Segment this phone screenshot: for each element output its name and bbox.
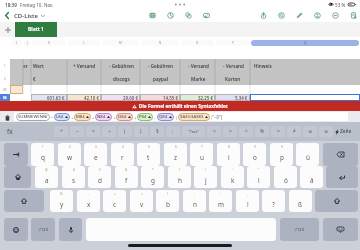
button[interactable]: × [86,126,100,137]
button[interactable]: Zahlen und Symbole [31,218,55,241]
button[interactable]: * [141,166,164,188]
button[interactable]: Umschalt [4,190,44,212]
button[interactable]: Multitasking [173,3,187,6]
button[interactable]: . [262,190,285,212]
button[interactable]: 9 [243,143,266,166]
button[interactable]: 8 [217,143,240,166]
button[interactable]: 7 [190,143,213,166]
button[interactable]: Tabelle einfügen [143,9,161,22]
button[interactable]: + [103,190,126,212]
button[interactable]: + [54,126,68,137]
button[interactable]: Q [251,40,359,46]
staticText: ; [194,192,195,196]
button[interactable]: : [166,126,180,137]
button[interactable]: ö [274,166,297,188]
staticText: L84 [56,114,64,120]
button[interactable]: ' [221,166,244,188]
button[interactable]: Diktieren [59,218,82,241]
button[interactable]: Mitarbeiten [308,9,326,22]
button[interactable]: – [70,126,84,137]
button[interactable]: Zeilenumbruch [326,166,358,188]
button[interactable]: # [62,166,85,188]
button[interactable]: Mehr [344,9,360,22]
button[interactable]: Emoji [4,218,28,241]
button[interactable]: % [255,126,269,137]
button[interactable]: M84 [76,113,89,121]
button[interactable]: Blatt hinzufügen [0,22,15,37]
button[interactable]: , [236,190,259,212]
button[interactable]: Löschen [323,143,358,166]
button[interactable]: Zurück [1,9,12,22]
button[interactable]: 4 [111,143,134,166]
button[interactable]: Umschalt [315,190,358,212]
button[interactable]: ) [194,166,217,188]
button[interactable]: K [32,40,66,46]
button[interactable]: $ [150,126,164,137]
button[interactable]: Formel löschen [3,113,12,122]
button[interactable]: ≠ [287,126,301,137]
button[interactable]: @ [35,166,58,188]
button[interactable]: SUMMEWENN( [14,112,348,121]
button[interactable]: ß [289,190,312,212]
button[interactable]: Blatt 1 [15,22,57,37]
button[interactable]: Form einfügen [179,9,197,22]
button[interactable]: I [11,40,22,46]
button[interactable]: Q84 [159,113,172,121]
button[interactable]: M [102,40,139,46]
button[interactable]: ≤ [303,126,317,137]
button[interactable]: ä [300,166,323,188]
button[interactable]: : [209,190,232,212]
button[interactable]: Umschalt [4,166,31,188]
button[interactable]: Entfernen [326,9,344,22]
button[interactable]: Markieren [290,9,308,22]
button[interactable]: ^ [239,126,253,137]
button[interactable]: 5 [137,143,160,166]
button[interactable]: "Text" [182,126,205,137]
button[interactable]: 3 [84,143,107,166]
button[interactable]: - [77,190,100,212]
button[interactable]: N84 [97,113,110,121]
button[interactable]: Zahlen und Symbole [280,218,319,241]
button[interactable]: Tabulator [4,143,28,166]
button[interactable]: $A$3:$A$83 [180,113,208,121]
button[interactable]: / [156,190,179,212]
button[interactable]: Medien einfügen [197,9,215,22]
button[interactable]: ( [168,166,191,188]
button[interactable]: Zeile [335,122,352,141]
button[interactable]: € [88,166,111,188]
button[interactable]: % [50,190,73,212]
button[interactable]: L84 [56,113,68,121]
button[interactable]: > [223,126,237,137]
button[interactable]: 0 [270,143,293,166]
button[interactable]: SUMMEWENN( [18,113,48,121]
button[interactable]: Suchen [272,9,290,22]
button[interactable]: 1 [31,143,54,166]
button[interactable]: ÷ [102,126,116,137]
button[interactable]: N [141,40,179,46]
button[interactable]: L [68,40,100,46]
button[interactable]: " [247,166,270,188]
button[interactable]: J [24,40,30,46]
button[interactable]: 6 [164,143,187,166]
button[interactable]: O84 [118,113,131,121]
button[interactable]: & [115,166,138,188]
button[interactable]: O [181,40,214,46]
button[interactable]: Funktionen [7,122,13,141]
button[interactable]: < [207,126,221,137]
button[interactable]: ) [134,126,148,137]
button[interactable]: ; [183,190,206,212]
button[interactable]: = [130,190,153,212]
button[interactable]: ( [118,126,132,137]
button[interactable]: P [216,40,249,46]
button[interactable]: 2 [58,143,81,166]
button[interactable]: Diagramm einfügen [161,9,179,22]
button[interactable]: ü [296,143,319,166]
button[interactable]: CD-Liste [14,9,45,22]
button[interactable]: ≥ [319,126,333,137]
button[interactable]: = [271,126,285,137]
button[interactable]: Tastatur ausblenden [323,218,358,241]
button[interactable]: Teilen [254,9,272,22]
staticText: 9 [254,145,256,149]
button[interactable]: P84 [139,113,151,121]
